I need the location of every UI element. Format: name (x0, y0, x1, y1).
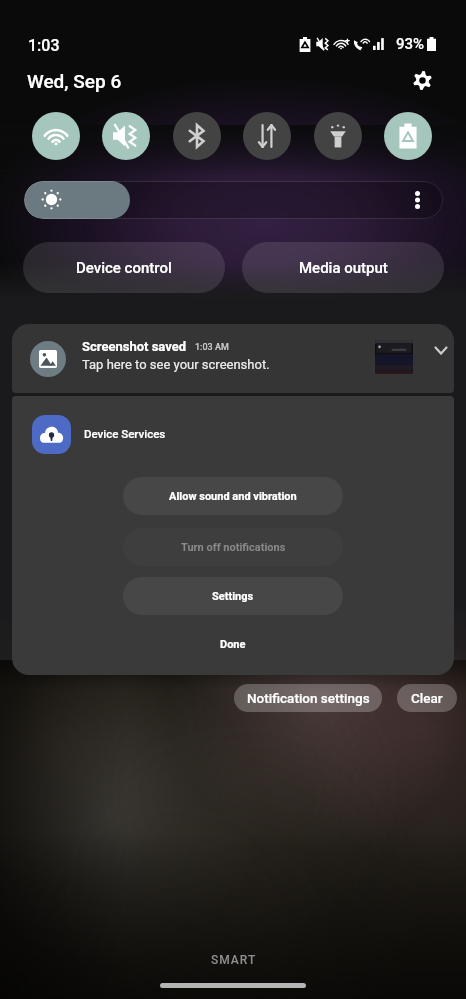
button[interactable]: Device control (23, 242, 225, 293)
button[interactable]: Wi-Fi (32, 112, 80, 160)
staticText: Turn off notifications (181, 541, 286, 554)
button[interactable]: Media output (242, 242, 444, 293)
button[interactable]: Brightness (24, 181, 443, 219)
button[interactable]: Done (12, 630, 454, 658)
staticText: 1:03 (28, 36, 60, 55)
button[interactable]: Notification settings (234, 684, 382, 712)
staticText: Allow sound and vibration (169, 490, 297, 503)
staticText: Done (220, 638, 246, 651)
button[interactable]: Turn off notifications (123, 528, 343, 566)
staticText: Device Services (84, 427, 166, 440)
staticText: Device control (76, 259, 172, 277)
button[interactable]: Mobile data (243, 112, 291, 160)
button[interactable]: Settings (123, 577, 343, 615)
staticText: Settings (212, 590, 254, 603)
staticText: Tap here to see your screenshot. (82, 357, 270, 372)
staticText: Wed, Sep 6 (27, 70, 122, 92)
button[interactable]: Allow sound and vibration (123, 477, 343, 515)
button[interactable]: Expand (423, 332, 454, 368)
staticText: Media output (299, 259, 388, 277)
button[interactable]: Power saving (384, 112, 432, 160)
button[interactable]: Clear (397, 684, 457, 712)
staticText: 93% (396, 35, 425, 53)
staticText: Clear (411, 690, 443, 706)
button[interactable]: Sound off (102, 112, 150, 160)
button[interactable]: Screenshot saved (12, 324, 454, 393)
staticText: Notification settings (247, 690, 370, 706)
button[interactable]: Flashlight (314, 112, 362, 160)
staticText: 1:03 AM (195, 342, 229, 353)
staticText: Screenshot saved (82, 339, 187, 354)
button[interactable]: Bluetooth (173, 112, 221, 160)
staticText: SMART (211, 953, 257, 967)
button[interactable]: Settings (409, 67, 435, 93)
